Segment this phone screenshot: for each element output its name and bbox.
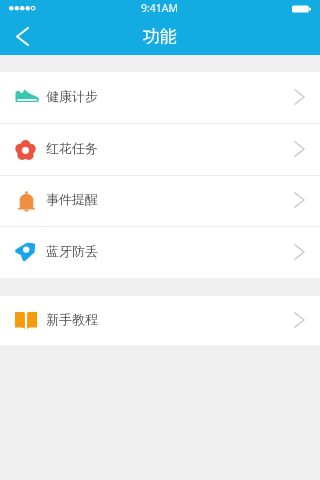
staticText: 红花任务 <box>46 140 98 156</box>
button[interactable]: 事件提醒 <box>0 176 320 226</box>
button[interactable]: 新手教程 <box>0 296 320 345</box>
staticText: 健康计步 <box>46 88 98 104</box>
staticText: 9:41AM <box>141 1 179 15</box>
staticText: 功能 <box>143 26 177 47</box>
staticText: 蓝牙防丢 <box>46 243 98 259</box>
staticText: 新手教程 <box>46 311 98 327</box>
button[interactable]: Back <box>0 17 44 55</box>
staticText: 事件提醒 <box>46 191 98 207</box>
button[interactable]: 蓝牙防丢 <box>0 227 320 278</box>
button[interactable]: 健康计步 <box>0 72 320 123</box>
button[interactable]: 红花任务 <box>0 124 320 175</box>
